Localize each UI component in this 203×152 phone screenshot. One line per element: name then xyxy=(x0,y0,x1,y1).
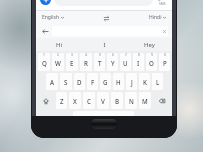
staticText: 9 xyxy=(151,53,153,57)
staticText: Y xyxy=(111,59,115,67)
button[interactable]: Add attachment xyxy=(40,0,51,5)
staticText: G xyxy=(103,78,108,86)
button[interactable]: H xyxy=(113,73,124,90)
button[interactable]: F xyxy=(87,73,98,90)
staticText: I xyxy=(137,59,140,67)
staticText: F xyxy=(91,78,95,86)
button[interactable]: Shift xyxy=(38,92,54,109)
staticText: Hindi xyxy=(149,14,162,21)
button[interactable]: D xyxy=(74,73,85,90)
staticText: SMS xyxy=(159,2,166,6)
button[interactable]: Hindi xyxy=(149,14,166,21)
button[interactable]: M xyxy=(139,92,151,109)
staticText: L xyxy=(156,78,160,86)
button[interactable]: B xyxy=(111,92,123,109)
staticText: 0 xyxy=(164,53,166,57)
staticText: K xyxy=(143,78,147,86)
button[interactable]: , xyxy=(59,111,71,128)
staticText: C xyxy=(87,97,91,105)
staticText: I xyxy=(103,41,106,49)
button[interactable]: 4 xyxy=(80,53,92,71)
button[interactable]: Back xyxy=(40,26,50,36)
button[interactable]: A xyxy=(46,73,58,90)
button[interactable]: Space xyxy=(73,111,134,128)
button[interactable]: 6 xyxy=(107,53,118,71)
staticText: J xyxy=(131,78,133,86)
staticText: P xyxy=(163,59,167,67)
button[interactable]: Home xyxy=(91,119,117,129)
staticText: N xyxy=(129,97,134,105)
button[interactable]: . xyxy=(136,111,148,128)
button[interactable]: 2 xyxy=(52,53,64,71)
button[interactable]: Send SMS xyxy=(157,0,168,6)
staticText: 2 xyxy=(57,53,59,57)
button[interactable]: Swap languages xyxy=(101,13,111,23)
staticText: 7 xyxy=(125,53,127,57)
button[interactable]: 3 xyxy=(66,53,78,71)
button[interactable]: 1 xyxy=(38,53,50,71)
staticText: 3 xyxy=(71,53,73,57)
staticText: 5 xyxy=(99,53,101,57)
button[interactable]: Hey xyxy=(127,38,172,51)
staticText: English xyxy=(97,117,111,122)
button[interactable]: J xyxy=(126,73,137,90)
button[interactable]: 9 xyxy=(146,53,157,71)
staticText: R xyxy=(84,59,88,67)
staticText: O xyxy=(149,59,154,67)
staticText: S xyxy=(64,78,68,86)
staticText: E xyxy=(70,59,74,67)
button[interactable]: Enter xyxy=(150,111,170,128)
button[interactable]: I xyxy=(82,38,127,51)
button[interactable]: Z xyxy=(56,92,67,109)
staticText: Hey xyxy=(144,41,155,49)
button[interactable]: G xyxy=(100,73,111,90)
button[interactable]: Hi xyxy=(36,38,82,51)
staticText: W xyxy=(55,59,61,67)
staticText: U xyxy=(123,59,128,67)
button[interactable]: S xyxy=(60,73,72,90)
button[interactable]: C xyxy=(83,92,95,109)
staticText: Hi xyxy=(56,41,62,49)
button[interactable]: Clear text xyxy=(162,29,166,33)
button[interactable]: 123 xyxy=(38,111,57,128)
button[interactable]: X xyxy=(69,92,81,109)
staticText: M xyxy=(142,97,148,105)
staticText: Z xyxy=(60,97,64,105)
button[interactable]: V xyxy=(97,92,109,109)
staticText: 8 xyxy=(138,53,140,57)
staticText: D xyxy=(77,78,82,86)
button[interactable]: English xyxy=(42,14,64,21)
button[interactable]: 5 xyxy=(94,53,105,71)
button[interactable]: L xyxy=(152,73,163,90)
button[interactable]: Backspace xyxy=(153,92,170,109)
staticText: 4 xyxy=(85,53,87,57)
button[interactable]: 0 xyxy=(159,53,170,71)
staticText: 1 xyxy=(43,53,45,57)
staticText: English xyxy=(42,14,60,21)
staticText: B xyxy=(115,97,120,105)
staticText: X xyxy=(73,97,77,105)
staticText: 6 xyxy=(112,53,114,57)
button[interactable]: N xyxy=(125,92,137,109)
staticText: T xyxy=(98,59,102,67)
button[interactable]: Clear text xyxy=(52,26,168,36)
staticText: Q xyxy=(42,59,47,67)
staticText: H xyxy=(116,78,121,86)
staticText: A xyxy=(50,78,55,86)
button[interactable]: 8 xyxy=(133,53,144,71)
button[interactable]: K xyxy=(139,73,150,90)
staticText: V xyxy=(101,97,105,105)
button[interactable]: 7 xyxy=(120,53,131,71)
